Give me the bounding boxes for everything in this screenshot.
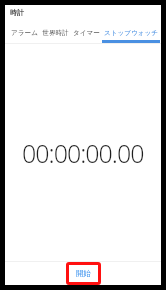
staticText: 00:00:00.00 — [22, 136, 144, 170]
button[interactable]: 開始 — [66, 262, 101, 285]
button[interactable]: 世界時計 — [40, 20, 71, 43]
staticText: 時計 — [10, 8, 24, 17]
staticText: ストップウォッチ — [104, 29, 158, 37]
staticText: アラーム — [11, 29, 38, 37]
button[interactable]: アラーム — [9, 20, 40, 43]
button[interactable]: ストップウォッチ — [102, 20, 160, 43]
staticText: タイマー — [73, 29, 100, 37]
staticText: 世界時計 — [42, 29, 69, 37]
button[interactable]: タイマー — [71, 20, 102, 43]
staticText: 開始 — [76, 269, 91, 278]
